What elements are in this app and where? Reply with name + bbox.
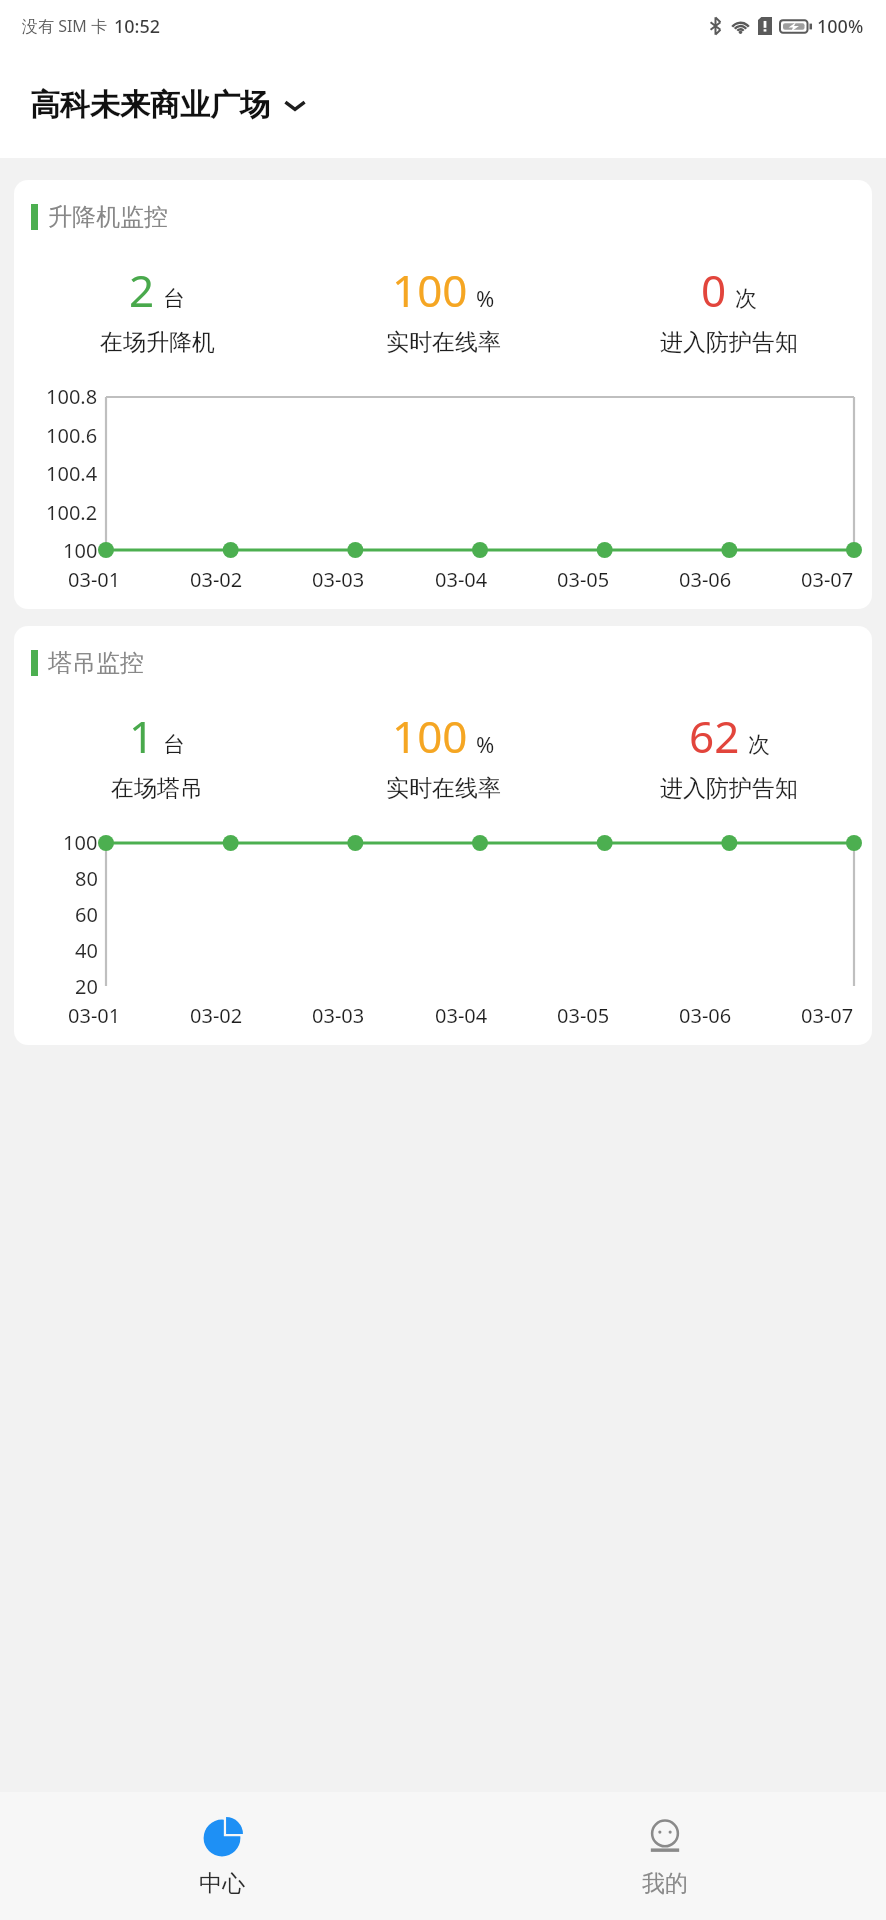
staticText: 03-01 xyxy=(68,566,121,593)
button[interactable]: 0 xyxy=(586,260,872,357)
staticText: 03-05 xyxy=(557,1002,610,1029)
staticText: 03-07 xyxy=(801,566,854,593)
button[interactable]: 我的 xyxy=(443,1792,886,1920)
button[interactable]: 塔吊监控 xyxy=(14,626,872,1045)
staticText: 次 xyxy=(735,285,757,313)
staticText: 2 xyxy=(129,260,155,320)
staticText: 80 xyxy=(75,865,98,892)
staticText: 03-02 xyxy=(190,566,243,593)
button[interactable]: 中心 xyxy=(0,1792,443,1920)
staticText: 100 xyxy=(63,537,98,564)
button[interactable]: 高科未来商业广场 xyxy=(0,52,886,158)
staticText: 100.6 xyxy=(46,422,98,449)
button[interactable]: 2 xyxy=(14,260,300,357)
staticText: 实时在线率 xyxy=(386,328,501,357)
staticText: 40 xyxy=(75,937,98,964)
staticText: 20 xyxy=(75,973,98,1000)
staticText: 台 xyxy=(163,731,185,759)
staticText: 0 xyxy=(701,260,727,320)
staticText: 进入防护告知 xyxy=(660,774,798,803)
staticText: 中心 xyxy=(199,1869,245,1898)
staticText: 03-03 xyxy=(312,566,365,593)
staticText: % xyxy=(476,729,495,759)
staticText: 升降机监控 xyxy=(48,202,168,232)
staticText: 100 xyxy=(63,829,98,856)
staticText: 进入防护告知 xyxy=(660,328,798,357)
staticText: 100% xyxy=(817,14,864,39)
staticText: 03-05 xyxy=(557,566,610,593)
staticText: 03-02 xyxy=(190,1002,243,1029)
staticText: 03-04 xyxy=(435,1002,488,1029)
button[interactable]: 100 xyxy=(300,706,586,803)
staticText: 03-03 xyxy=(312,1002,365,1029)
staticText: 1 xyxy=(129,706,155,766)
button[interactable]: 升降机监控 xyxy=(14,180,872,609)
staticText: 100 xyxy=(392,260,468,320)
staticText: 60 xyxy=(75,901,98,928)
staticText: 03-04 xyxy=(435,566,488,593)
staticText: 03-06 xyxy=(679,566,732,593)
staticText: 03-06 xyxy=(679,1002,732,1029)
staticText: 我的 xyxy=(642,1869,688,1898)
staticText: 62 xyxy=(689,706,740,766)
staticText: 100.2 xyxy=(46,499,98,526)
staticText: 在场塔吊 xyxy=(111,774,203,803)
staticText: 100.4 xyxy=(46,460,98,487)
button[interactable]: 62 xyxy=(586,706,872,803)
staticText: 100 xyxy=(392,706,468,766)
staticText: 台 xyxy=(163,285,185,313)
staticText: 没有 SIM 卡 xyxy=(22,15,108,37)
staticText: 100.8 xyxy=(46,383,98,410)
staticText: 03-07 xyxy=(801,1002,854,1029)
staticText: 在场升降机 xyxy=(100,328,215,357)
button[interactable]: 1 xyxy=(14,706,300,803)
staticText: 实时在线率 xyxy=(386,774,501,803)
staticText: 03-01 xyxy=(68,1002,121,1029)
staticText: 10:52 xyxy=(114,14,161,39)
staticText: 高科未来商业广场 xyxy=(30,86,270,124)
staticText: 塔吊监控 xyxy=(48,648,144,678)
staticText: 次 xyxy=(748,731,770,759)
button[interactable]: 100 xyxy=(300,260,586,357)
staticText: % xyxy=(476,283,495,313)
